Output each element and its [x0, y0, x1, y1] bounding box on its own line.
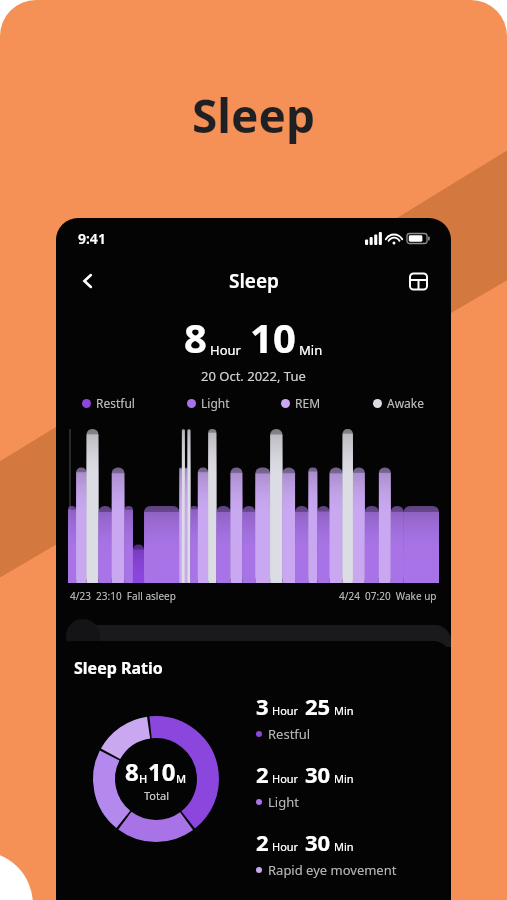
staticText: 8 — [125, 755, 139, 788]
staticText: Sleep — [229, 268, 279, 294]
staticText: Total — [144, 788, 169, 803]
staticText: 4/23 23:10 Fall asleep — [70, 589, 176, 603]
button[interactable]: Awake — [373, 395, 425, 411]
staticText: 30 — [305, 827, 331, 857]
staticText: Light — [268, 793, 299, 811]
button[interactable]: 2 — [256, 759, 354, 811]
staticText: 2 — [256, 759, 269, 789]
staticText: 30 — [305, 759, 331, 789]
staticText: 8 — [184, 310, 207, 364]
button[interactable]: 2 — [256, 827, 397, 879]
staticText: Hour — [272, 703, 299, 718]
staticText: 3 — [256, 691, 269, 721]
staticText: REM — [295, 395, 321, 411]
staticText: Min — [334, 703, 354, 718]
button[interactable]: 3 — [256, 691, 354, 743]
staticText: Sleep — [192, 84, 316, 147]
button[interactable]: Calendar — [399, 262, 437, 300]
staticText: 4/24 07:20 Wake up — [339, 589, 437, 603]
staticText: 25 — [305, 691, 331, 721]
staticText: Sleep Ratio — [74, 657, 163, 679]
button[interactable]: REM — [281, 395, 321, 411]
staticText: 10 — [250, 310, 296, 364]
staticText: Restful — [268, 725, 311, 743]
staticText: 10 — [148, 755, 176, 788]
staticText: Hour — [272, 771, 299, 786]
staticText: M — [176, 771, 187, 786]
staticText: Rapid eye movement — [268, 861, 397, 879]
staticText: H — [139, 771, 148, 786]
staticText: Min — [334, 839, 354, 854]
button[interactable]: Restful — [82, 395, 135, 411]
staticText: Min — [299, 341, 323, 359]
staticText: Hour — [272, 839, 299, 854]
staticText: 9:41 — [78, 229, 106, 248]
button[interactable]: Light — [187, 395, 230, 411]
staticText: Restful — [96, 395, 135, 411]
staticText: Min — [334, 771, 354, 786]
staticText: Hour — [210, 341, 241, 359]
staticText: Awake — [387, 395, 425, 411]
button[interactable]: Back — [68, 261, 108, 301]
staticText: Light — [201, 395, 230, 411]
staticText: 2 — [256, 827, 269, 857]
staticText: 20 Oct. 2022, Tue — [201, 367, 306, 385]
